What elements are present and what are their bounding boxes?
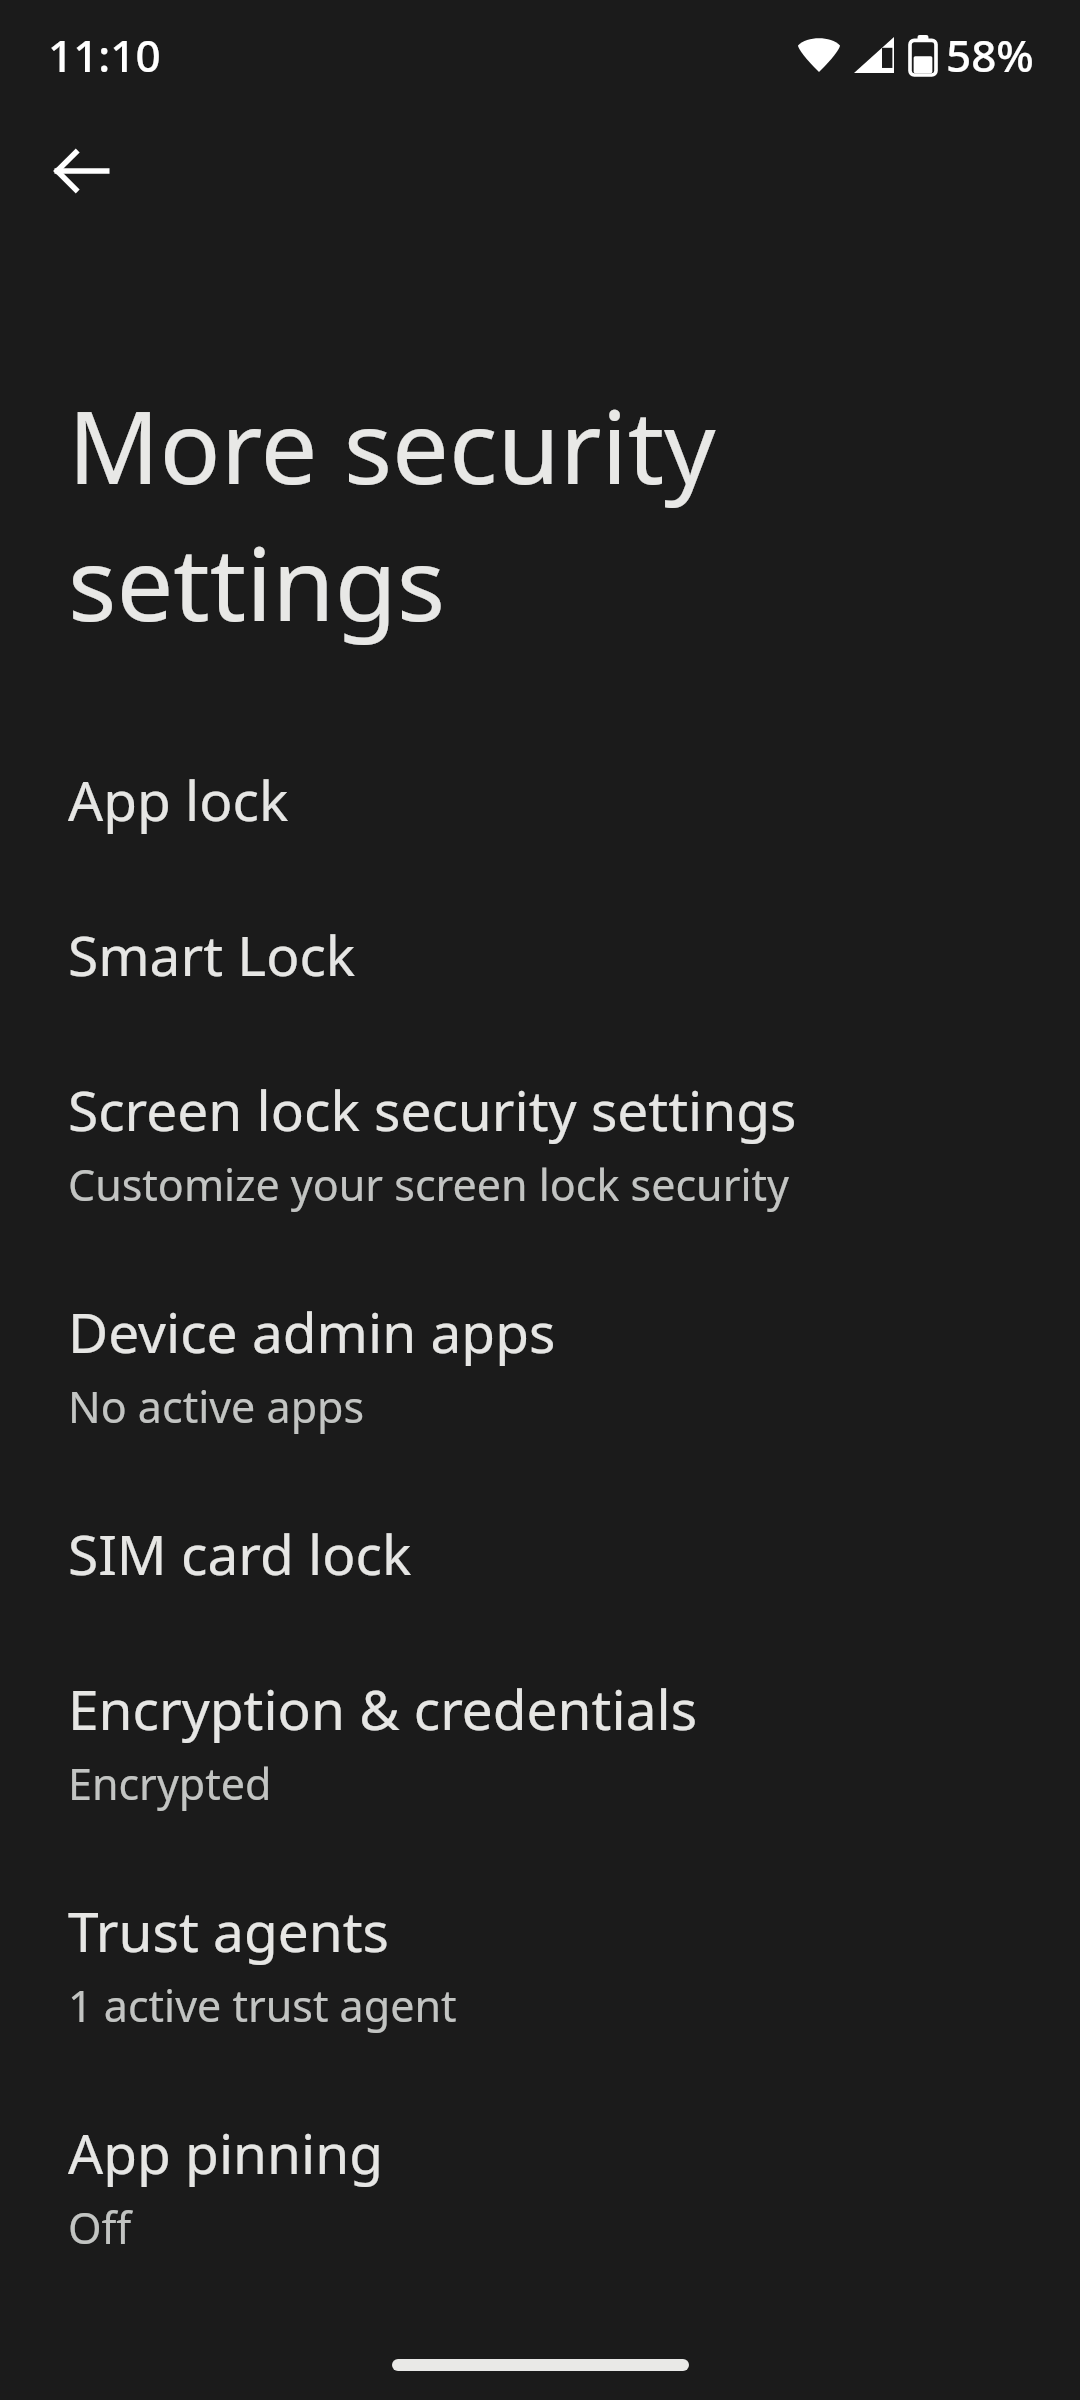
button[interactable]: Device admin apps (0, 1254, 1080, 1476)
button[interactable]: Encryption & credentials (0, 1631, 1080, 1853)
button[interactable]: App lock (0, 722, 1080, 877)
staticText: 1 active trust agent (68, 1976, 457, 2035)
staticText: Trust agents (68, 1893, 389, 1968)
staticText: Screen lock security settings (68, 1072, 797, 1147)
staticText: More security settings (68, 376, 990, 650)
staticText: Customize your screen lock security (68, 1155, 789, 1214)
button[interactable]: Back (24, 113, 140, 229)
staticText: Device admin apps (68, 1294, 556, 1369)
button[interactable]: Trust agents (0, 1853, 1080, 2075)
staticText: Encrypted (68, 1754, 272, 1813)
staticText: Smart Lock (68, 917, 356, 992)
staticText: Encryption & credentials (68, 1671, 698, 1746)
button[interactable]: Screen lock security settings (0, 1032, 1080, 1254)
staticText: 58% (946, 25, 1034, 85)
staticText: Off (68, 2198, 132, 2257)
button[interactable]: SIM card lock (0, 1476, 1080, 1631)
button[interactable]: Smart Lock (0, 877, 1080, 1032)
staticText: No active apps (68, 1377, 365, 1436)
staticText: App pinning (68, 2115, 384, 2190)
staticText: SIM card lock (68, 1516, 412, 1591)
staticText: App lock (68, 762, 289, 837)
staticText: 11:10 (48, 25, 161, 85)
button[interactable]: App pinning (0, 2075, 1080, 2297)
